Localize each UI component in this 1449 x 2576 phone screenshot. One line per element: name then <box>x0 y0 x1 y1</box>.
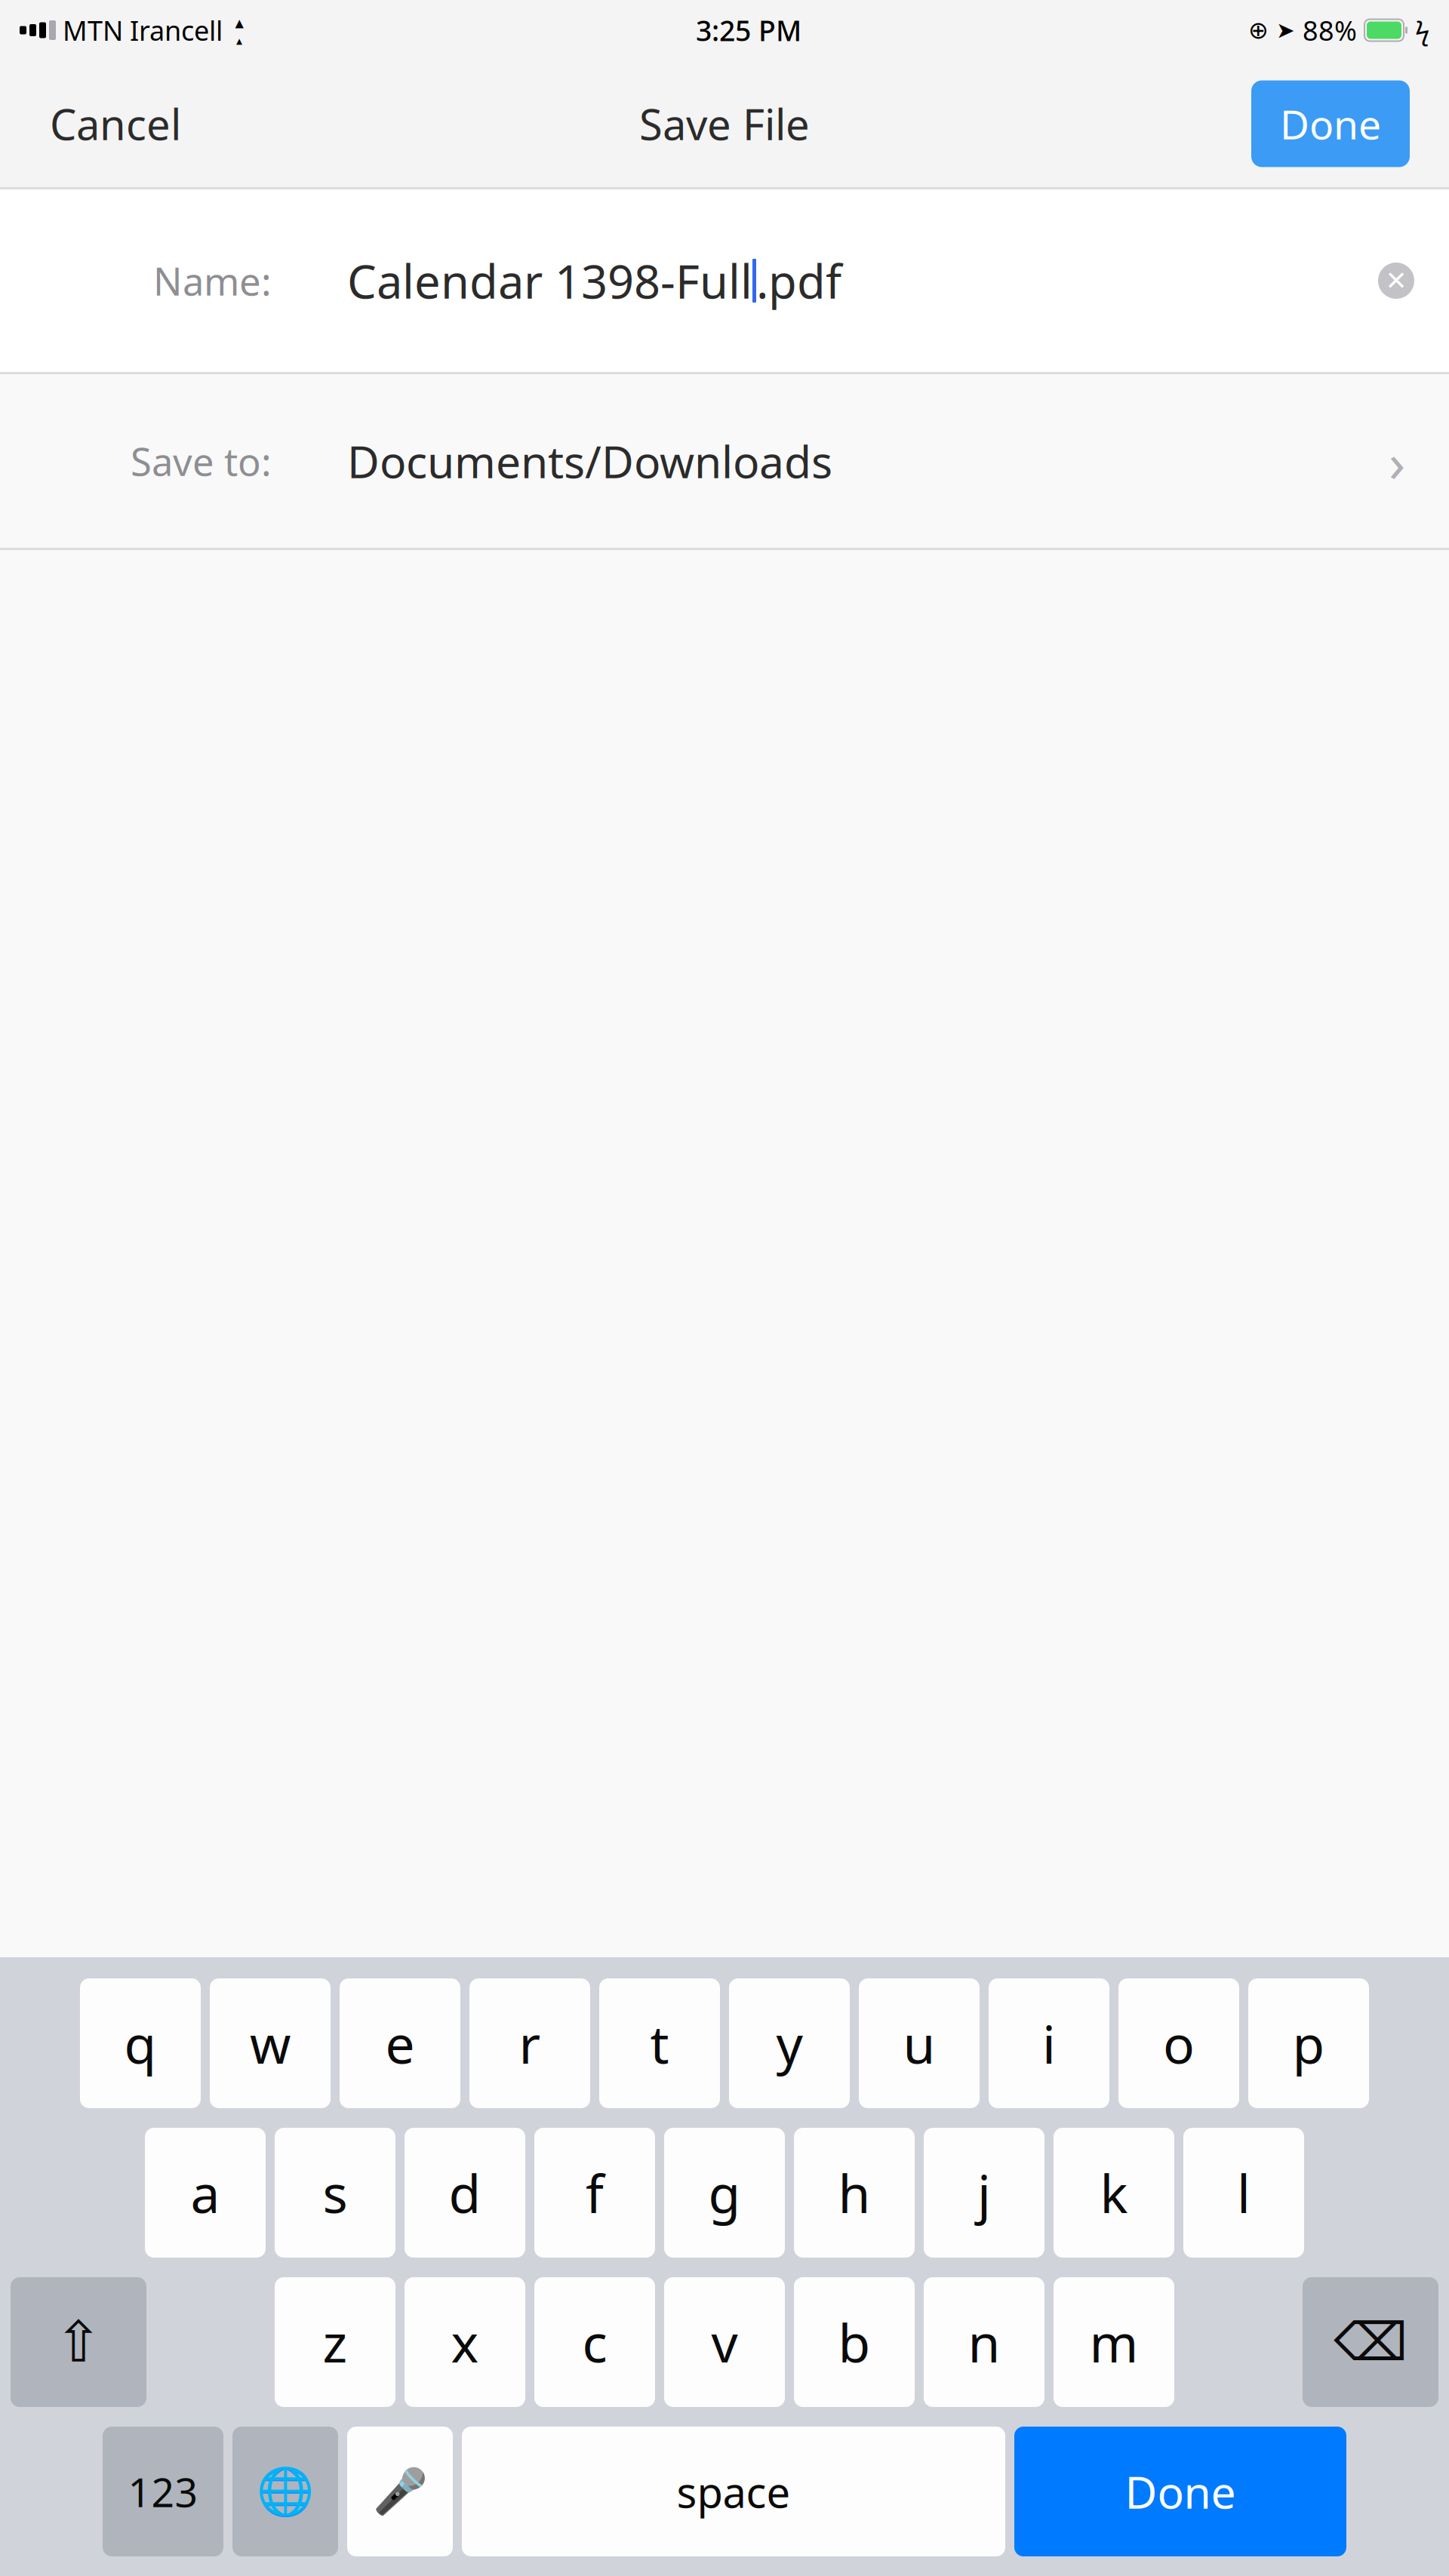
staticText: 88% <box>1303 12 1357 48</box>
staticText: y <box>776 2009 803 2078</box>
button[interactable]: p <box>1248 1978 1369 2108</box>
staticText: o <box>1163 2009 1195 2078</box>
staticText: ➤ <box>1276 18 1295 43</box>
button[interactable]: n <box>924 2277 1044 2407</box>
staticText: e <box>385 2009 415 2078</box>
button[interactable]: m <box>1054 2277 1174 2407</box>
button[interactable]: c <box>534 2277 655 2407</box>
staticText: Save to: <box>131 436 272 486</box>
button[interactable]: d <box>405 2128 525 2258</box>
staticText: › <box>1389 425 1405 497</box>
button[interactable]: Done <box>1251 80 1410 167</box>
staticText: w <box>250 2009 291 2078</box>
button[interactable]: y <box>729 1978 850 2108</box>
staticText: 🎤 <box>372 2466 428 2517</box>
staticText: ⌫ <box>1334 2312 1407 2372</box>
staticText: s <box>323 2158 348 2227</box>
button[interactable]: w <box>210 1978 331 2108</box>
staticText: Save File <box>639 96 810 152</box>
staticText: q <box>124 2009 157 2078</box>
button[interactable]: g <box>664 2128 785 2258</box>
button[interactable]: z <box>275 2277 395 2407</box>
staticText: h <box>838 2158 871 2227</box>
staticText: n <box>968 2307 1000 2377</box>
staticText: f <box>586 2158 604 2227</box>
staticText: t <box>650 2009 669 2078</box>
staticText: j <box>977 2158 991 2227</box>
staticText: z <box>323 2307 348 2377</box>
staticText: m <box>1089 2307 1138 2377</box>
button[interactable]: space <box>462 2427 1005 2556</box>
staticText: MTN Irancell <box>63 12 223 48</box>
button[interactable]: Done <box>1014 2427 1346 2556</box>
button[interactable]: a <box>145 2128 266 2258</box>
staticText: .pdf <box>756 250 841 311</box>
staticText: 🌐 <box>257 2465 314 2518</box>
staticText: g <box>708 2158 741 2227</box>
staticText: i <box>1042 2009 1056 2078</box>
button[interactable]: x <box>405 2277 525 2407</box>
staticText: r <box>519 2009 541 2078</box>
button[interactable]: o <box>1118 1978 1239 2108</box>
staticText: ✕ <box>1385 266 1407 295</box>
staticText: ⇧ <box>55 2310 102 2374</box>
staticText: k <box>1100 2158 1128 2227</box>
button[interactable]: b <box>794 2277 915 2407</box>
staticText: u <box>903 2009 935 2078</box>
button[interactable]: Shift <box>11 2277 146 2407</box>
staticText: a <box>191 2158 220 2227</box>
button[interactable]: s <box>275 2128 395 2258</box>
button[interactable]: Cancel <box>39 84 192 164</box>
button[interactable]: Next keyboard <box>232 2427 338 2556</box>
staticText: 3:25 PM <box>696 11 801 49</box>
staticText: ⊕ <box>1248 16 1269 44</box>
button[interactable]: Save to: <box>0 374 1449 548</box>
staticText: Done <box>1280 97 1381 150</box>
button[interactable]: h <box>794 2128 915 2258</box>
staticText: space <box>677 2463 791 2520</box>
button[interactable]: 123 <box>103 2427 223 2556</box>
button[interactable]: q <box>80 1978 201 2108</box>
button[interactable]: r <box>469 1978 590 2108</box>
staticText: c <box>582 2307 607 2377</box>
staticText: 123 <box>128 2465 198 2518</box>
staticText: Documents/Downloads <box>347 432 832 490</box>
staticText: Cancel <box>50 96 181 152</box>
staticText: Done <box>1125 2462 1236 2521</box>
button[interactable]: e <box>340 1978 460 2108</box>
staticText: ▴ <box>236 34 242 48</box>
button[interactable]: Clear text <box>1366 251 1426 311</box>
staticText: Calendar 1398-Full <box>347 250 752 311</box>
button[interactable]: Dictation <box>347 2427 453 2556</box>
staticText: Name: <box>153 255 272 306</box>
button[interactable]: Delete <box>1303 2277 1438 2407</box>
staticText: ϟ <box>1415 13 1429 48</box>
button[interactable]: v <box>664 2277 785 2407</box>
staticText: ▴ <box>235 13 243 32</box>
staticText: p <box>1292 2009 1325 2078</box>
staticText: v <box>711 2307 738 2377</box>
button[interactable]: j <box>924 2128 1044 2258</box>
staticText: x <box>451 2307 479 2377</box>
button[interactable]: k <box>1054 2128 1174 2258</box>
staticText: d <box>449 2158 481 2227</box>
button[interactable]: f <box>534 2128 655 2258</box>
staticText: l <box>1237 2158 1251 2227</box>
button[interactable]: i <box>989 1978 1109 2108</box>
button[interactable]: u <box>859 1978 980 2108</box>
button[interactable]: l <box>1183 2128 1304 2258</box>
button[interactable]: t <box>599 1978 720 2108</box>
staticText: b <box>838 2307 871 2377</box>
